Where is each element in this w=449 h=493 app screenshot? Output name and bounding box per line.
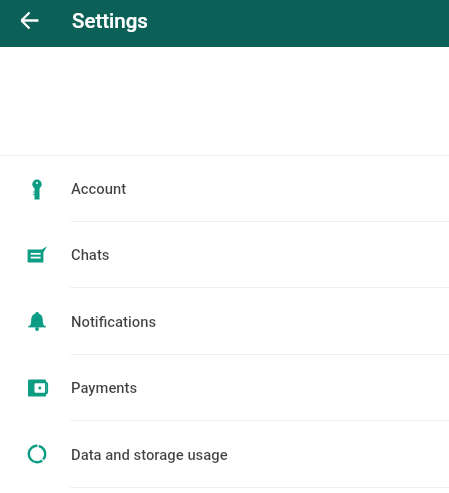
staticText: Notifications (71, 313, 157, 330)
staticText: Chats (71, 246, 110, 263)
button[interactable]: Chats (0, 222, 449, 287)
button[interactable]: Payments (0, 355, 449, 420)
button[interactable]: Notifications (0, 288, 449, 354)
staticText: Settings (72, 9, 148, 33)
button[interactable]: Data and storage usage (0, 421, 449, 487)
button[interactable]: Back (11, 2, 47, 38)
staticText: Payments (71, 379, 138, 396)
staticText: Account (71, 180, 127, 197)
staticText: Data and storage usage (71, 446, 228, 463)
button[interactable]: Account (0, 156, 449, 221)
